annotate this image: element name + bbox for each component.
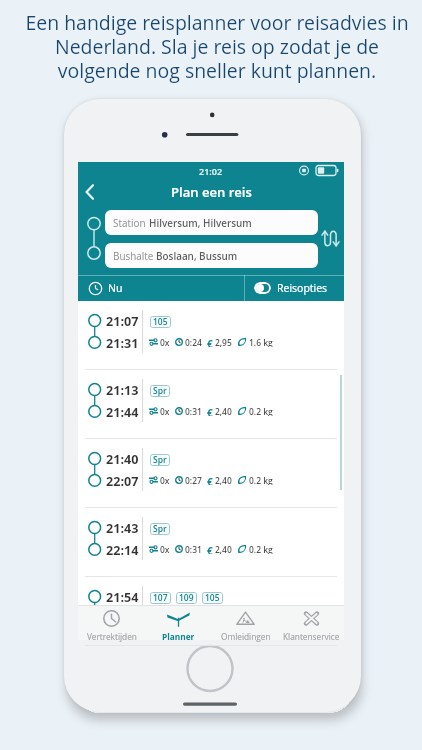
staticText: 21:02 <box>199 165 223 177</box>
staticText: 21:31 <box>106 335 139 352</box>
staticText: 0x <box>160 406 170 416</box>
staticText: 0:27 <box>185 475 202 485</box>
staticText: 21:43 <box>106 520 139 537</box>
staticText: Planner <box>162 631 195 642</box>
button[interactable]: Bushalte <box>105 243 318 268</box>
staticText: Reisopties <box>277 281 328 295</box>
staticText: 0:24 <box>185 337 202 347</box>
staticText: 22:14 <box>106 542 139 559</box>
staticText: 21:40 <box>106 451 139 468</box>
staticText: 2,95 <box>215 337 232 347</box>
staticText: 1.6 kg <box>249 337 273 347</box>
staticText: Een handige reisplanner voor reisadvies … <box>6 9 422 84</box>
staticText: 22:07 <box>106 473 139 490</box>
staticText: € <box>207 406 213 416</box>
staticText: Bushalte <box>113 249 156 262</box>
button[interactable]: Station <box>105 210 318 235</box>
button[interactable]: 21:54 <box>78 577 344 645</box>
staticText: Spr <box>153 385 167 397</box>
staticText: Station <box>113 216 149 229</box>
staticText: 0:26 <box>185 613 202 623</box>
staticText: 0x <box>160 475 170 485</box>
staticText: € <box>207 337 213 347</box>
staticText: Nu <box>108 281 123 295</box>
button[interactable]: Vertrektijden <box>78 606 145 640</box>
staticText: 2,40 <box>215 475 232 485</box>
staticText: 0.2 kg <box>249 406 273 416</box>
button[interactable]: Planner <box>145 606 212 640</box>
button[interactable]: Swap origin and destination <box>322 230 339 247</box>
staticText: € <box>207 475 213 485</box>
staticText: Vertrektijden <box>87 631 137 642</box>
button[interactable]: 21:40 <box>78 439 344 507</box>
button[interactable]: 21:07 <box>78 301 344 369</box>
button[interactable]: Omleidingen <box>212 606 279 640</box>
staticText: Spr <box>153 523 167 535</box>
button[interactable]: Nu <box>78 275 244 301</box>
staticText: 0.2 kg <box>249 544 273 554</box>
staticText: 22:20 <box>106 611 139 628</box>
staticText: 0x <box>160 544 170 554</box>
staticText: 109 <box>179 592 194 604</box>
staticText: 0x <box>160 613 170 623</box>
staticText: Hilversum, Hilversum <box>149 216 252 229</box>
staticText: 0x <box>160 337 170 347</box>
staticText: Boslaan, Bussum <box>156 249 238 262</box>
staticText: Omleidingen <box>221 631 271 642</box>
staticText: 21:44 <box>106 404 139 421</box>
staticText: € <box>207 544 213 554</box>
staticText: 107 <box>153 592 168 604</box>
staticText: Klantenservice <box>283 631 340 642</box>
staticText: 2,40 <box>215 406 232 416</box>
staticText: Plan een reis <box>171 183 252 201</box>
staticText: 21:54 <box>106 589 139 606</box>
staticText: 0.2 kg <box>249 475 273 485</box>
button[interactable]: 21:13 <box>78 370 344 438</box>
staticText: 21:07 <box>106 313 139 330</box>
staticText: 0:31 <box>185 406 202 416</box>
staticText: 1.6 kg <box>249 613 273 623</box>
button[interactable]: 21:43 <box>78 508 344 576</box>
staticText: 105 <box>153 316 168 328</box>
staticText: 105 <box>205 592 220 604</box>
button[interactable]: Back <box>78 180 102 204</box>
staticText: 21:13 <box>106 382 139 399</box>
staticText: 2,40 <box>215 544 232 554</box>
button[interactable]: Reisopties <box>245 275 328 301</box>
button[interactable]: Klantenservice <box>279 606 344 640</box>
staticText: Spr <box>153 454 167 466</box>
staticText: 0:31 <box>185 544 202 554</box>
